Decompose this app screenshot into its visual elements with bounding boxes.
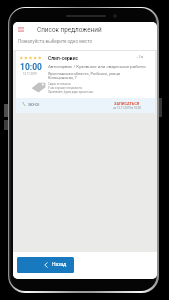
staticText: ЗАПИСАТЬСЯ (114, 101, 140, 106)
button[interactable]: Open navigation menu (14, 23, 27, 36)
staticText: 12.11.2019 (23, 72, 37, 75)
button[interactable]: Назад (17, 257, 74, 273)
staticText: Ярославская область, Рыбинск, улица Коль… (48, 71, 120, 80)
staticText: Слип-сервис (48, 55, 79, 61)
staticText: ~ 3 м (136, 55, 144, 58)
staticText: ЗВОНОК (28, 103, 40, 106)
staticText: на 12.11.2019 в 10:00 (113, 106, 141, 109)
button[interactable]: 10:00 (16, 51, 155, 113)
button[interactable]: ЗАПИСАТЬСЯ (111, 99, 151, 111)
button[interactable]: ЗВОНОК (20, 100, 42, 108)
staticText: Автосервис / Кузовные или сварочные рабо… (48, 64, 146, 69)
staticText: Список предложений (37, 26, 102, 34)
staticText: Назад (52, 261, 67, 267)
staticText: 10:00 (20, 62, 42, 72)
staticText: Пожалуйста выберите одно место (18, 39, 93, 44)
staticText: Сварю за полцены У нас хорошие специалис… (48, 83, 94, 94)
